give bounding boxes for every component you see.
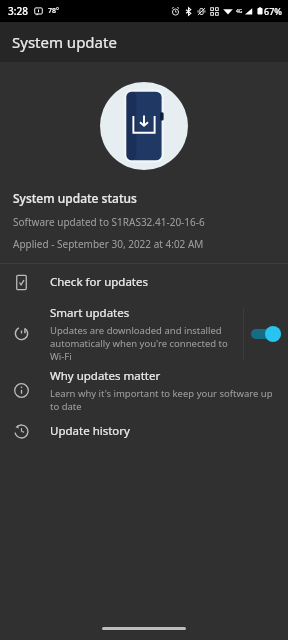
- staticText: 4G: [236, 8, 243, 15]
- staticText: Learn why it's important to keep your so…: [50, 387, 280, 413]
- button[interactable]: Update history: [0, 413, 288, 449]
- staticText: 78°: [48, 6, 59, 16]
- button[interactable]: Check for updates: [0, 264, 288, 300]
- button[interactable]: Smart updates toggle: [244, 300, 288, 367]
- staticText: System update: [12, 32, 117, 52]
- staticText: Updates are downloaded and installed aut…: [50, 324, 235, 363]
- staticText: Smart updates: [50, 305, 130, 321]
- staticText: Software updated to S1RAS32.41-20-16-6: [13, 215, 205, 229]
- staticText: 67%: [264, 5, 282, 17]
- button[interactable]: Smart updates: [0, 300, 243, 367]
- staticText: Applied - September 30, 2022 at 4:02 AM: [13, 237, 204, 251]
- staticText: Check for updates: [50, 274, 149, 290]
- staticText: Update history: [50, 423, 130, 439]
- staticText: System update status: [13, 190, 137, 206]
- staticText: 3:28: [8, 4, 28, 18]
- button[interactable]: Why updates matter: [0, 367, 288, 413]
- staticText: Why updates matter: [50, 368, 161, 384]
